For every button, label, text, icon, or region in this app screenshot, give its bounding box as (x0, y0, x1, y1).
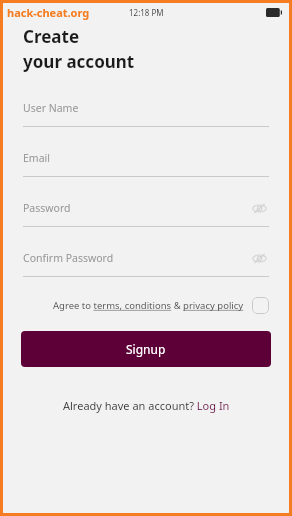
staticText: Password (23, 201, 71, 215)
button[interactable]: Already have an account? Log In (63, 398, 230, 413)
staticText: Signup (126, 341, 166, 357)
button[interactable]: Email (23, 148, 269, 168)
staticText: your account (23, 50, 135, 73)
button[interactable]: Password (23, 198, 269, 218)
staticText: hack-cheat.org (7, 5, 90, 20)
button[interactable]: Agree to terms checkbox (252, 297, 269, 314)
staticText: Create (23, 25, 80, 48)
button[interactable]: Agree to terms, conditions & privacy pol… (53, 299, 244, 312)
staticText: Confirm Password (23, 251, 114, 265)
button[interactable]: User Name (23, 98, 269, 118)
staticText: User Name (23, 101, 79, 115)
staticText: Email (23, 151, 50, 165)
button[interactable]: Signup (21, 331, 271, 367)
button[interactable]: Show password (249, 198, 269, 218)
button[interactable]: Show password (249, 248, 269, 268)
button[interactable]: Confirm Password (23, 248, 269, 268)
staticText: 12:18 PM (129, 7, 164, 18)
